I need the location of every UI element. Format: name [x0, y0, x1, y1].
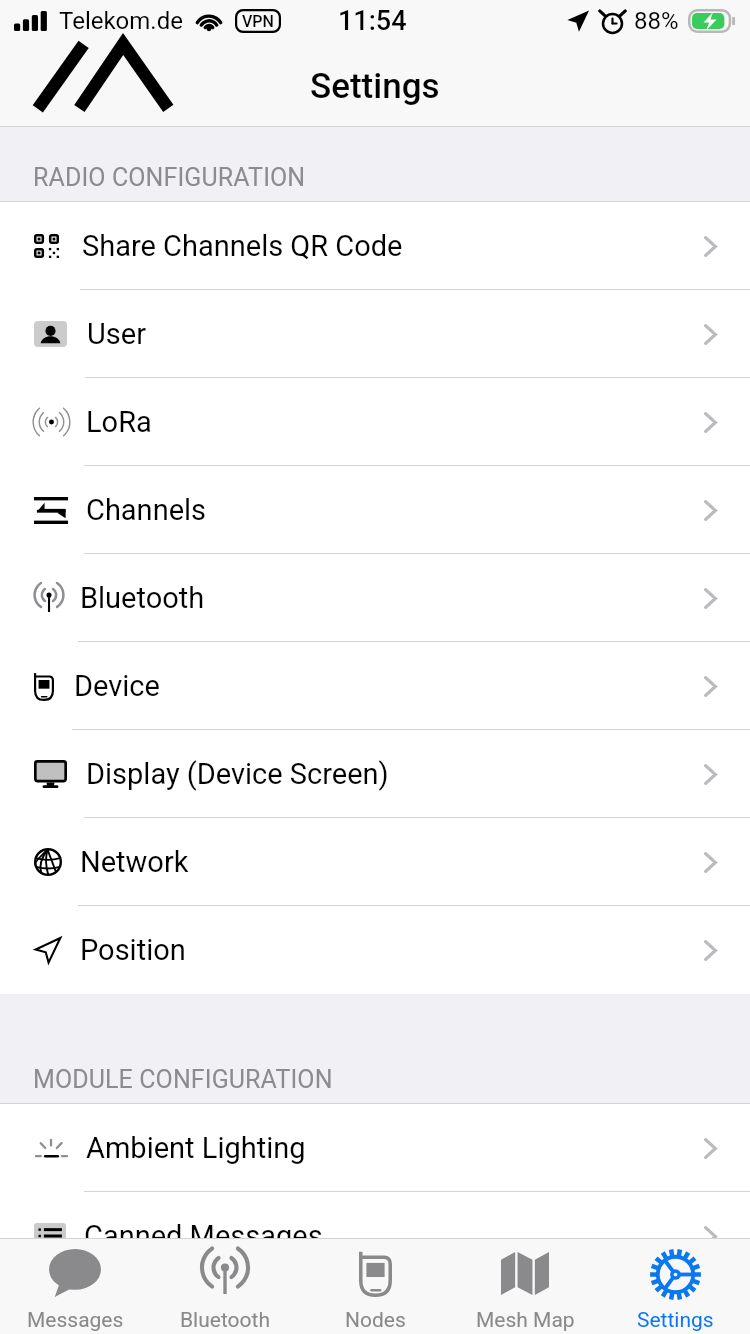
button[interactable]: Canned Messages — [0, 1192, 750, 1238]
staticText: Bluetooth — [80, 581, 205, 615]
button[interactable]: Share Channels QR Code — [0, 202, 750, 290]
button[interactable]: Ambient Lighting — [0, 1104, 750, 1192]
staticText: Telekom.de — [59, 7, 183, 35]
button[interactable]: Messages — [0, 1238, 150, 1334]
staticText: Settings — [637, 1308, 714, 1333]
staticText: 88% — [634, 7, 679, 35]
staticText: Mesh Map — [476, 1308, 575, 1333]
button[interactable]: Nodes — [300, 1238, 450, 1334]
staticText: VPN — [242, 12, 274, 31]
staticText: Position — [80, 933, 186, 967]
button[interactable]: Bluetooth — [150, 1238, 300, 1334]
staticText: Share Channels QR Code — [82, 229, 403, 263]
staticText: Network — [80, 845, 189, 879]
staticText: Nodes — [345, 1308, 406, 1333]
staticText: RADIO CONFIGURATION — [33, 163, 306, 192]
button[interactable]: User — [0, 290, 750, 378]
button[interactable]: LoRa — [0, 378, 750, 466]
staticText: Settings — [310, 66, 440, 107]
staticText: MODULE CONFIGURATION — [33, 1065, 333, 1094]
button[interactable]: Device — [0, 642, 750, 730]
staticText: User — [87, 317, 146, 351]
staticText: Messages — [27, 1308, 124, 1333]
button[interactable]: Position — [0, 906, 750, 994]
staticText: LoRa — [86, 405, 152, 439]
staticText: Bluetooth — [180, 1308, 270, 1333]
staticText: Ambient Lighting — [86, 1131, 306, 1165]
staticText: Canned Messages — [84, 1219, 323, 1238]
staticText: Device — [74, 669, 160, 703]
button[interactable]: Channels — [0, 466, 750, 554]
other: Meshtastic — [30, 44, 176, 116]
staticText: Display (Device Screen) — [86, 757, 389, 791]
button[interactable]: Bluetooth — [0, 554, 750, 642]
staticText: 11:54 — [338, 5, 407, 37]
button[interactable]: Network — [0, 818, 750, 906]
button[interactable]: Display (Device Screen) — [0, 730, 750, 818]
button[interactable]: Settings — [600, 1238, 750, 1334]
button[interactable]: Mesh Map — [450, 1238, 600, 1334]
staticText: Channels — [86, 493, 207, 527]
